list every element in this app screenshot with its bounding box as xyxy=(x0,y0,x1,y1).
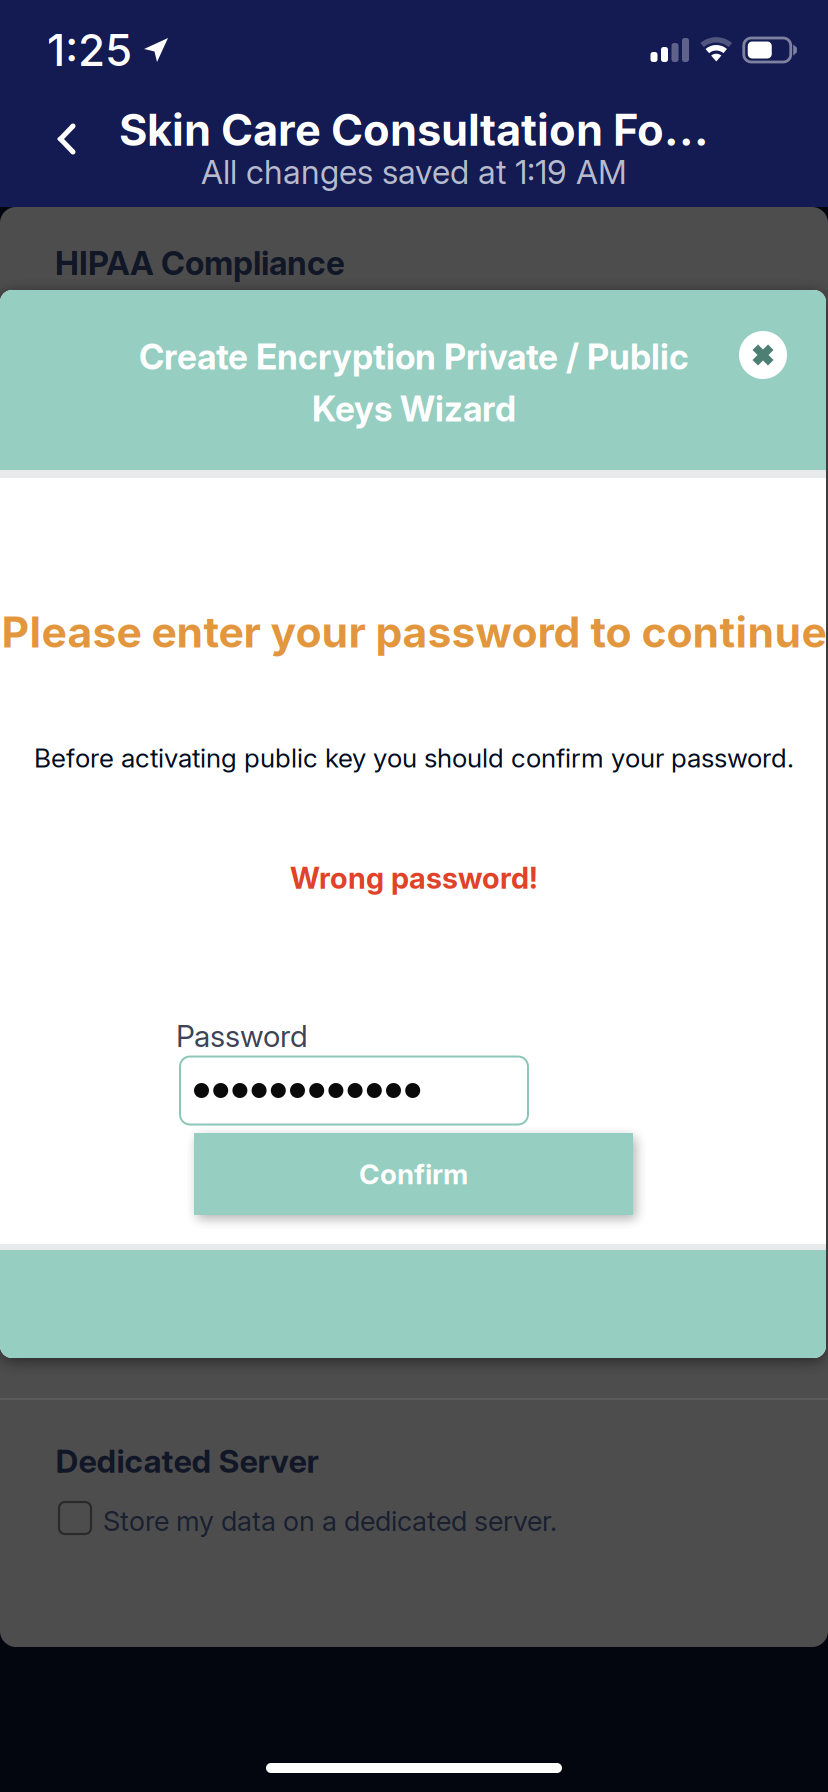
button[interactable]: Confirm xyxy=(194,1133,633,1215)
staticText: All changes saved at 1:19 AM xyxy=(201,152,627,192)
staticText: Please enter your password to continue xyxy=(1,606,826,658)
button[interactable]: Close xyxy=(739,331,787,379)
staticText: Keys Wizard xyxy=(312,388,516,430)
staticText: Dedicated Server xyxy=(55,1442,318,1480)
staticText: Skin Care Consultation Fo... xyxy=(119,104,709,156)
staticText: Wrong password! xyxy=(290,860,538,896)
staticText: 1:25 xyxy=(47,23,132,77)
staticText: HIPAA Compliance xyxy=(55,243,345,283)
staticText: Password xyxy=(176,1018,308,1054)
staticText: Before activating public key you should … xyxy=(34,742,794,774)
staticText: Confirm xyxy=(359,1157,468,1191)
staticText: Store my data on a dedicated server. xyxy=(103,1504,557,1538)
button[interactable]: Back xyxy=(31,103,103,175)
staticText: Create Encryption Private / Public xyxy=(139,336,689,378)
